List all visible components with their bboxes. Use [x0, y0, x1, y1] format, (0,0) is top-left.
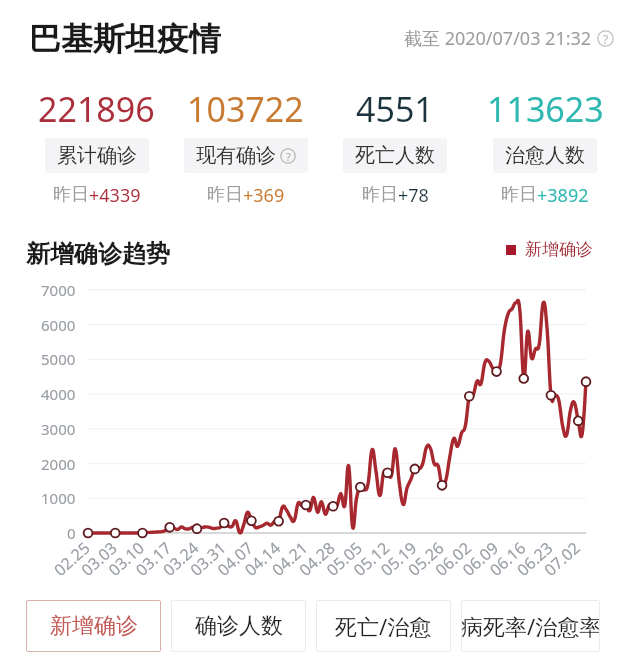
- staticText: 死亡人数: [355, 143, 435, 168]
- staticText: +369: [243, 183, 285, 208]
- staticText: 新增确诊: [525, 239, 593, 260]
- staticText: ?: [286, 149, 291, 164]
- staticText: 4551: [356, 86, 434, 122]
- staticText: 巴基斯坦疫情: [29, 19, 221, 59]
- staticText: 病死率/治愈率: [461, 611, 600, 641]
- staticText: 现有确诊: [196, 143, 276, 168]
- staticText: 103722: [187, 86, 304, 122]
- staticText: 截至 2020/07/03 21:32: [404, 26, 592, 51]
- button[interactable]: 新增确诊: [26, 600, 161, 652]
- staticText: 死亡/治愈: [335, 611, 432, 641]
- staticText: ?: [603, 31, 609, 47]
- button[interactable]: 确诊人数: [171, 600, 306, 652]
- staticText: 昨日: [207, 183, 243, 206]
- staticText: 治愈人数: [505, 143, 585, 168]
- staticText: 新增确诊: [50, 612, 138, 640]
- staticText: 221896: [38, 86, 155, 122]
- staticText: +78: [398, 183, 429, 208]
- staticText: 确诊人数: [195, 612, 283, 640]
- staticText: +3892: [537, 183, 589, 208]
- staticText: 累计确诊: [57, 143, 137, 168]
- button[interactable]: 死亡/治愈: [316, 600, 451, 652]
- staticText: 113623: [487, 86, 604, 122]
- staticText: 昨日: [362, 183, 398, 206]
- staticText: +4339: [89, 183, 141, 208]
- staticText: 昨日: [501, 183, 537, 206]
- staticText: 昨日: [53, 183, 89, 206]
- staticText: 新增确诊趋势: [26, 239, 170, 269]
- button[interactable]: 病死率/治愈率: [461, 600, 600, 652]
